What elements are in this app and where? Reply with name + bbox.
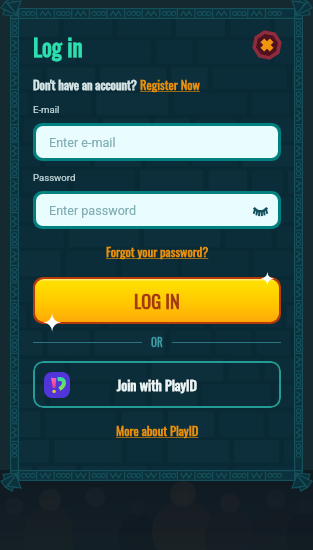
staticText: Enter password [49, 203, 137, 218]
staticText: More about PlayID [116, 421, 199, 440]
button[interactable]: Forgot your password? [106, 242, 209, 261]
staticText: OR [151, 334, 163, 350]
button[interactable]: LOG IN [35, 279, 279, 322]
staticText: E-mail [33, 104, 60, 115]
button[interactable]: Register Now [140, 75, 200, 94]
button[interactable]: Close [251, 29, 283, 61]
staticText: Register Now [140, 75, 200, 94]
staticText: Password [33, 172, 76, 183]
button[interactable]: More about PlayID [116, 421, 199, 440]
staticText: Enter e-mail [49, 135, 116, 150]
button[interactable]: Join with PlayID [33, 361, 281, 408]
staticText: Don't have an account? [33, 75, 140, 94]
staticText: Join with PlayID [117, 374, 197, 395]
staticText: LOG IN [134, 287, 180, 314]
button[interactable]: Enter password [36, 194, 278, 226]
staticText: Forgot your password? [106, 242, 209, 261]
staticText: Log in [33, 30, 83, 64]
button[interactable]: Enter e-mail [36, 126, 278, 158]
